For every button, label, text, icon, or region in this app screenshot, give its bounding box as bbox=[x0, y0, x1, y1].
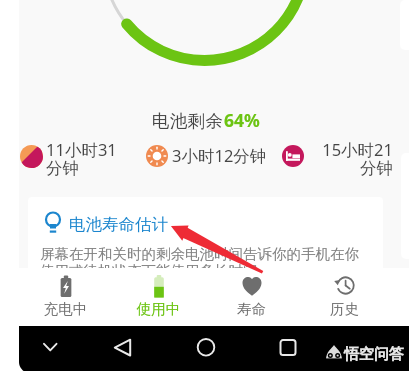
staticText: 屏幕在开和关时的剩余电池时间告诉你的手机在你使用或待机状态下能使用多长时间 bbox=[40, 245, 362, 280]
button[interactable]: 充电中 bbox=[19, 268, 112, 326]
staticText: 历史 bbox=[298, 300, 391, 318]
button[interactable]: 寿命 bbox=[205, 268, 298, 326]
button[interactable]: Back bbox=[109, 334, 135, 360]
staticText: 悟空问答 bbox=[344, 345, 404, 364]
staticText: 电池剩余 bbox=[152, 110, 224, 132]
staticText: 使用中 bbox=[112, 300, 205, 318]
staticText: 充电中 bbox=[19, 300, 112, 318]
button[interactable]: Hide navigation bar bbox=[41, 334, 67, 360]
staticText: 寿命 bbox=[205, 300, 298, 318]
button[interactable]: Home bbox=[193, 334, 219, 360]
button[interactable]: 历史 bbox=[298, 268, 391, 326]
button[interactable]: 使用中 bbox=[112, 268, 205, 326]
staticText: 11小时31 分钟 bbox=[46, 138, 117, 179]
staticText: 电池寿命估计 bbox=[69, 214, 168, 235]
button[interactable]: Recent apps bbox=[275, 334, 301, 360]
staticText: 15小时21 分钟 bbox=[273, 138, 393, 179]
staticText: 3小时12分钟 bbox=[172, 144, 267, 167]
staticText: 64% bbox=[224, 108, 260, 132]
